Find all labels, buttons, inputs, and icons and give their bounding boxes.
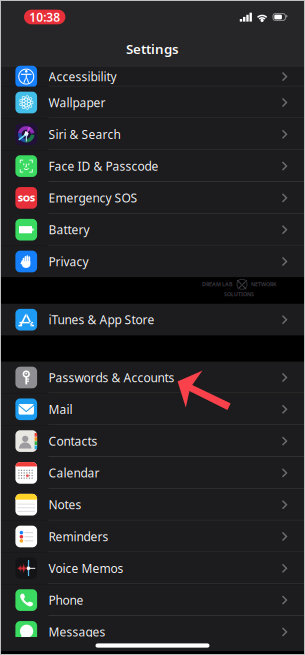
button[interactable]: Accessibility xyxy=(0,67,305,87)
button[interactable]: Voice Memos xyxy=(0,552,305,584)
button[interactable]: Reminders xyxy=(0,521,305,552)
staticText: Notes xyxy=(48,497,81,513)
staticText: SOS xyxy=(18,192,35,204)
button[interactable]: Wallpaper xyxy=(0,87,305,118)
staticText: SOLUTIONS xyxy=(224,291,254,298)
button[interactable]: Mail xyxy=(0,393,305,425)
staticText: Contacts xyxy=(48,433,97,449)
staticText: Mail xyxy=(48,401,72,417)
staticText: NETWORK xyxy=(251,281,276,288)
staticText: Reminders xyxy=(48,528,108,544)
staticText: Passwords & Accounts xyxy=(48,369,174,385)
button[interactable]: Battery xyxy=(0,214,305,246)
button[interactable]: Privacy xyxy=(0,246,305,277)
button[interactable]: Messages xyxy=(0,616,305,648)
staticText: iTunes & App Store xyxy=(48,312,154,328)
staticText: Battery xyxy=(48,222,89,238)
button[interactable]: Face ID & Passcode xyxy=(0,150,305,182)
staticText: Phone xyxy=(48,592,83,608)
staticText: DREAM LAB xyxy=(202,281,233,288)
button[interactable]: Siri & Search xyxy=(0,118,305,150)
staticText: Face ID & Passcode xyxy=(48,158,158,174)
staticText: Messages xyxy=(48,624,105,640)
button[interactable]: iTunes & App Store xyxy=(0,304,305,336)
button[interactable]: Calendar xyxy=(0,457,305,489)
staticText: Emergency SOS xyxy=(48,190,137,206)
staticText: Settings xyxy=(126,40,179,58)
button[interactable]: Phone xyxy=(0,584,305,616)
staticText: Voice Memos xyxy=(48,560,123,576)
button[interactable]: SOS xyxy=(0,182,305,214)
button[interactable]: Passwords & Accounts xyxy=(0,362,305,393)
staticText: Siri & Search xyxy=(48,126,120,142)
staticText: 10:38 xyxy=(29,9,60,25)
staticText: Privacy xyxy=(48,253,88,269)
button[interactable]: Notes xyxy=(0,489,305,521)
staticText: Accessibility xyxy=(48,69,116,84)
staticText: Wallpaper xyxy=(48,94,105,110)
button[interactable]: Contacts xyxy=(0,425,305,457)
staticText: Calendar xyxy=(48,465,99,481)
